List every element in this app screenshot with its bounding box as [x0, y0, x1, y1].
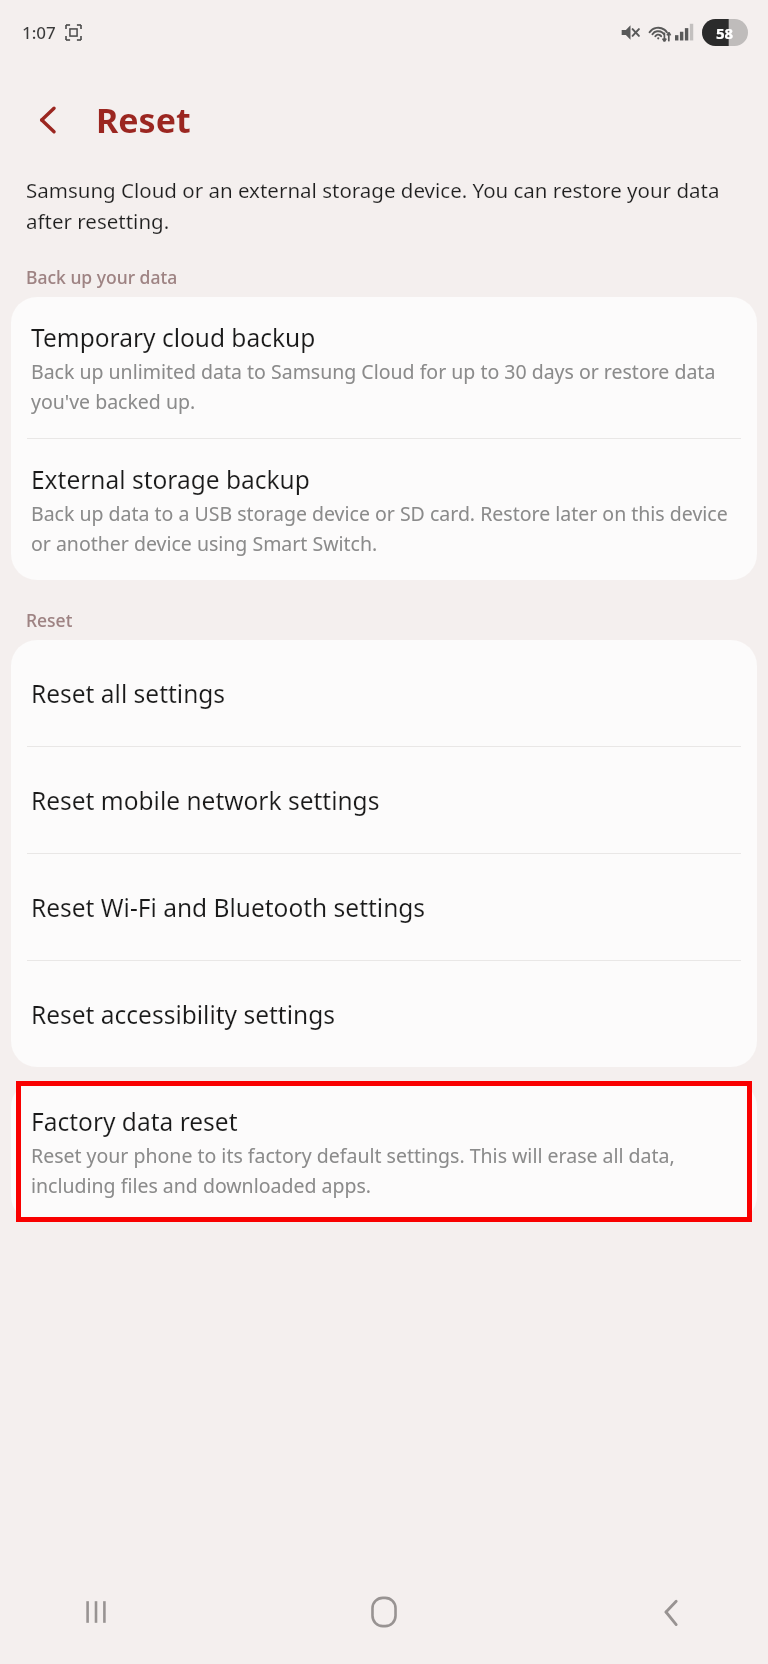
- button[interactable]: Recent apps: [58, 1574, 134, 1650]
- staticText: Reset mobile network settings: [31, 784, 380, 817]
- staticText: Back up unlimited data to Samsung Cloud …: [31, 358, 731, 414]
- staticText: Temporary cloud backup: [31, 321, 316, 354]
- staticText: 58: [716, 23, 734, 43]
- button[interactable]: Back: [634, 1574, 710, 1650]
- staticText: Reset your phone to its factory default …: [31, 1142, 731, 1198]
- button[interactable]: Reset Wi-Fi and Bluetooth settings: [11, 854, 757, 960]
- staticText: Reset: [26, 608, 73, 632]
- staticText: 1:07: [22, 21, 56, 44]
- button[interactable]: Home: [346, 1574, 422, 1650]
- staticText: Reset Wi-Fi and Bluetooth settings: [31, 891, 426, 924]
- button[interactable]: Reset accessibility settings: [11, 961, 757, 1067]
- staticText: Samsung Cloud or an external storage dev…: [26, 176, 728, 235]
- staticText: Reset all settings: [31, 677, 226, 710]
- button[interactable]: Reset all settings: [11, 640, 757, 746]
- staticText: Reset accessibility settings: [31, 998, 335, 1031]
- staticText: External storage backup: [31, 463, 310, 496]
- button[interactable]: Factory data reset: [11, 1081, 757, 1222]
- staticText: Back up data to a USB storage device or …: [31, 500, 731, 556]
- button[interactable]: Back: [22, 93, 76, 147]
- button[interactable]: Reset mobile network settings: [11, 747, 757, 853]
- staticText: Reset: [96, 97, 191, 143]
- button[interactable]: External storage backup: [11, 439, 757, 580]
- staticText: Back up your data: [26, 265, 178, 289]
- button[interactable]: Temporary cloud backup: [11, 297, 757, 438]
- staticText: Factory data reset: [31, 1105, 238, 1138]
